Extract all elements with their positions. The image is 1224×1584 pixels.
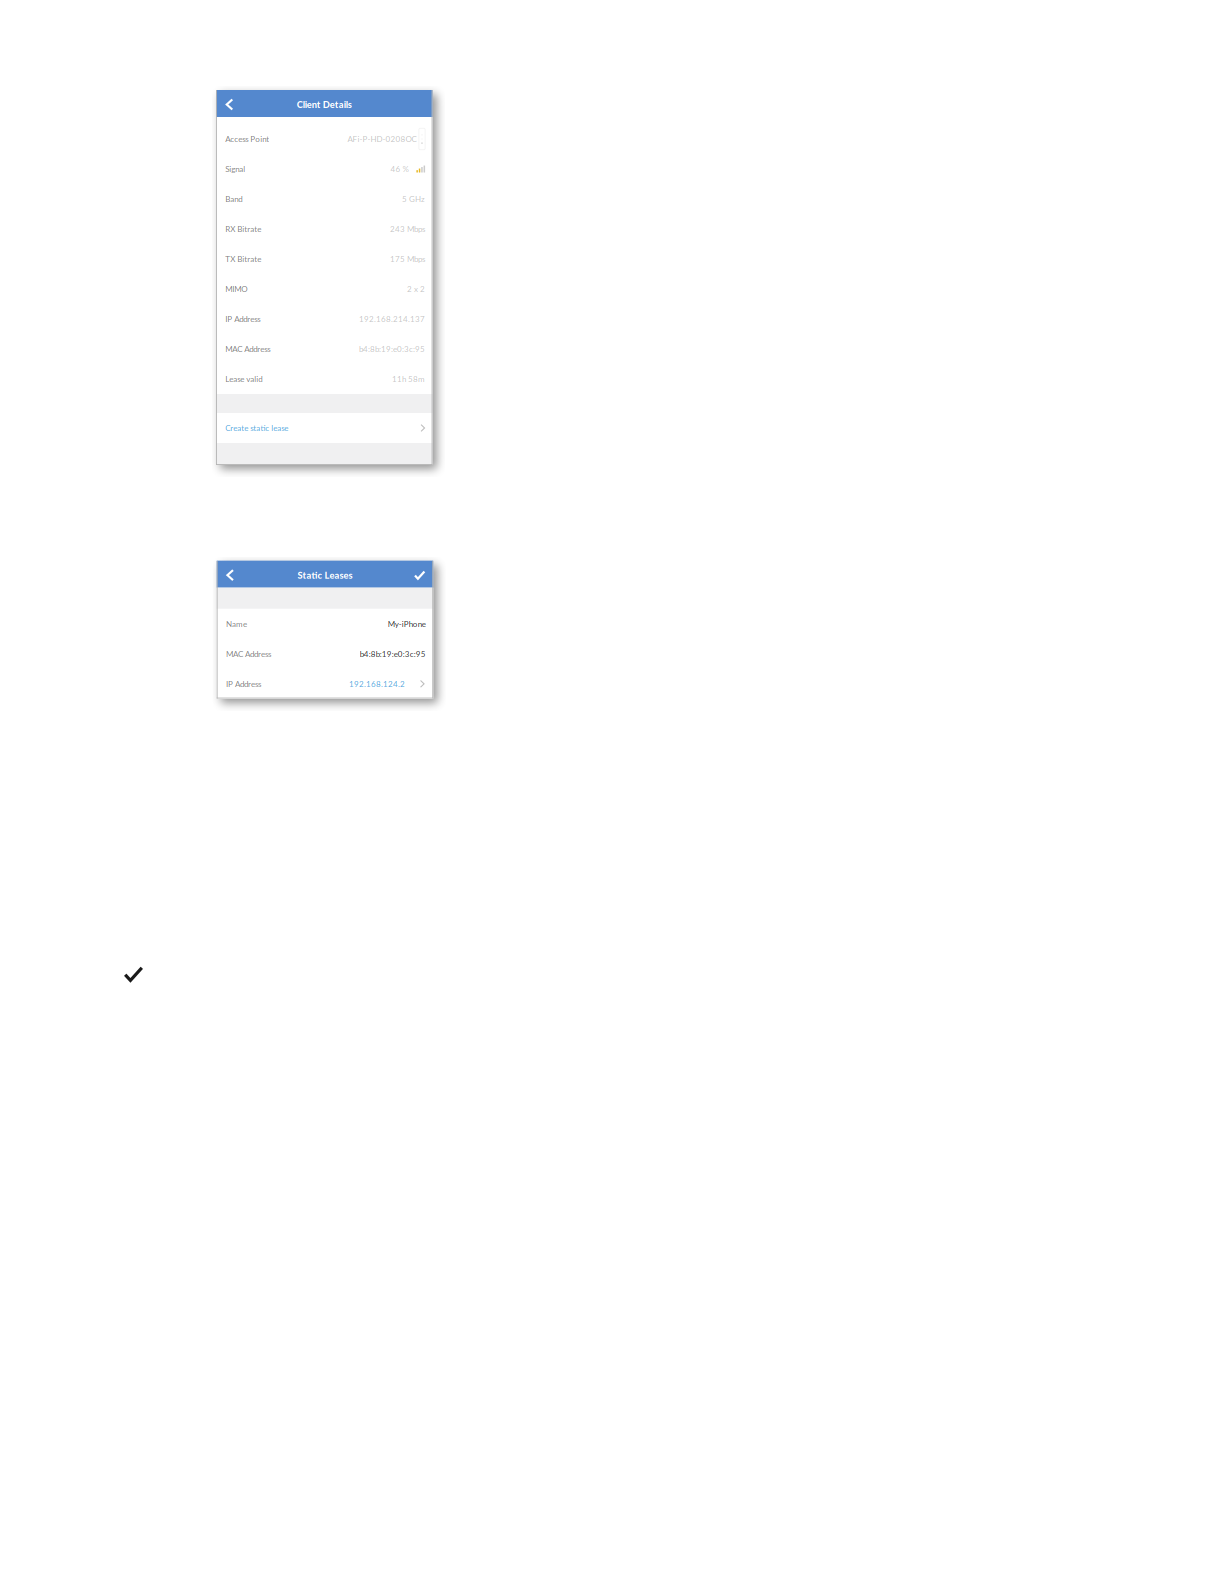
staticText: 2 x 2 bbox=[407, 284, 425, 294]
button[interactable]: Back bbox=[216, 90, 240, 117]
button[interactable]: Save bbox=[408, 561, 433, 588]
staticText: Static Leases bbox=[297, 569, 352, 581]
staticText: TX Bitrate bbox=[225, 254, 261, 264]
button[interactable]: Back bbox=[217, 561, 241, 588]
staticText: AFi-P-HD-0208OC bbox=[347, 134, 416, 144]
staticText: Client Details bbox=[297, 99, 352, 110]
staticText: b4:8b:19:e0:3c:95 bbox=[360, 649, 426, 659]
staticText: 192.168.124.2 bbox=[349, 679, 405, 689]
staticText: MIMO bbox=[225, 284, 247, 294]
staticText: Lease valid bbox=[225, 374, 262, 384]
staticText: Name bbox=[226, 619, 247, 629]
staticText: MAC Address bbox=[225, 344, 270, 354]
staticText: RX Bitrate bbox=[225, 224, 261, 234]
staticText: b4:8b:19:e0:3c:95 bbox=[359, 344, 425, 354]
staticText: Access Point bbox=[225, 134, 269, 144]
staticText: 11h 58m bbox=[392, 374, 425, 384]
staticText: Signal bbox=[225, 164, 245, 174]
staticText: IP Address bbox=[226, 679, 261, 689]
staticText: 192.168.214.137 bbox=[359, 314, 425, 324]
button[interactable]: Create static lease bbox=[216, 413, 432, 443]
staticText: 243 Mbps bbox=[390, 224, 425, 234]
staticText: MAC Address bbox=[226, 649, 271, 659]
staticText: My-iPhone bbox=[388, 619, 426, 629]
button[interactable]: IP Address bbox=[217, 669, 433, 699]
staticText: 5 GHz bbox=[402, 194, 425, 204]
staticText: IP Address bbox=[225, 314, 260, 324]
staticText: Create static lease bbox=[225, 423, 288, 433]
staticText: 175 Mbps bbox=[390, 254, 425, 264]
staticText: Band bbox=[225, 194, 242, 204]
staticText: 46 % bbox=[390, 164, 408, 174]
